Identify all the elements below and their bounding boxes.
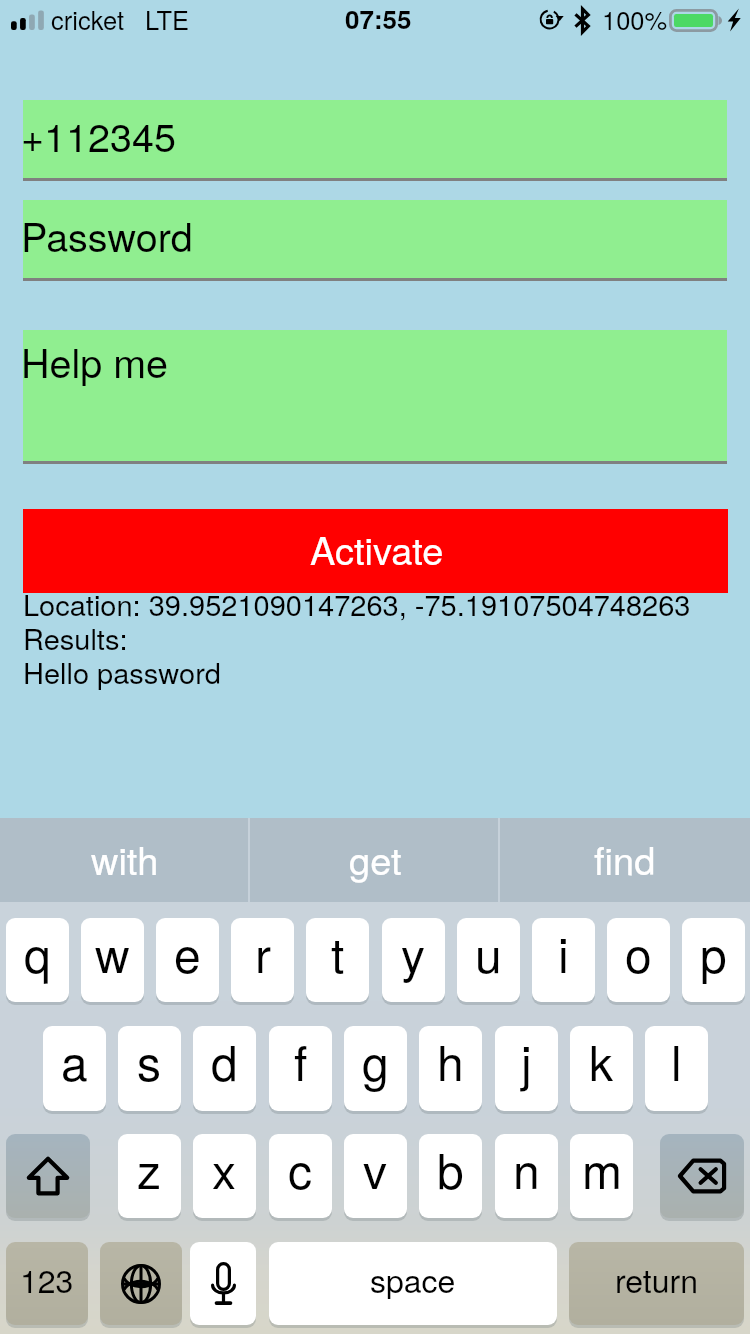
staticText: f	[294, 1026, 308, 1095]
staticText: n	[513, 1134, 540, 1203]
other: Bluetooth	[576, 9, 589, 32]
staticText: b	[437, 1134, 464, 1203]
button[interactable]: Password	[23, 200, 727, 281]
button[interactable]: l	[645, 1026, 708, 1111]
staticText: x	[212, 1134, 237, 1203]
button[interactable]: y	[382, 918, 445, 1002]
staticText: j	[521, 1026, 532, 1095]
staticText: g	[362, 1026, 389, 1095]
button[interactable]: a	[43, 1026, 106, 1111]
button[interactable]: n	[495, 1134, 558, 1218]
button[interactable]: s	[118, 1026, 181, 1111]
staticText: o	[625, 918, 652, 987]
staticText: k	[589, 1026, 614, 1095]
button[interactable]: c	[269, 1134, 332, 1218]
staticText: space	[370, 1256, 456, 1302]
button[interactable]: e	[156, 918, 219, 1002]
staticText: m	[582, 1134, 622, 1203]
button[interactable]: x	[193, 1134, 256, 1218]
staticText: return	[615, 1256, 698, 1302]
staticText: +112345	[21, 107, 176, 164]
button[interactable]: h	[419, 1026, 482, 1111]
button[interactable]: Change keyboard	[100, 1242, 182, 1325]
staticText: y	[401, 918, 426, 987]
button[interactable]: Backspace	[660, 1134, 744, 1218]
button[interactable]: Activate	[23, 509, 728, 593]
button[interactable]: with	[0, 818, 250, 902]
button[interactable]: d	[193, 1026, 256, 1111]
staticText: find	[594, 831, 656, 885]
staticText: h	[437, 1026, 464, 1095]
staticText: Location: 39.9521090147263, -75.19107504…	[23, 583, 691, 692]
button[interactable]: Help me	[23, 330, 727, 464]
staticText: LTE	[145, 1, 190, 38]
staticText: c	[288, 1134, 313, 1203]
button[interactable]: t	[306, 918, 369, 1002]
button[interactable]: p	[682, 918, 745, 1002]
button[interactable]: w	[81, 918, 144, 1002]
staticText: p	[700, 918, 727, 987]
button[interactable]: z	[118, 1134, 181, 1218]
button[interactable]: r	[231, 918, 294, 1002]
button[interactable]: get	[250, 818, 500, 902]
button[interactable]: o	[607, 918, 670, 1002]
button[interactable]: Dictate	[190, 1242, 256, 1325]
staticText: i	[558, 918, 569, 987]
button[interactable]: return	[569, 1242, 744, 1325]
staticText: a	[61, 1026, 88, 1095]
staticText: w	[95, 918, 130, 987]
button[interactable]: m	[570, 1134, 633, 1218]
button[interactable]: g	[344, 1026, 407, 1111]
button[interactable]: j	[495, 1026, 558, 1111]
staticText: q	[24, 918, 51, 987]
button[interactable]: Shift	[6, 1134, 90, 1218]
staticText: e	[174, 918, 201, 987]
staticText: cricket	[51, 1, 125, 38]
staticText: with	[91, 831, 159, 885]
staticText: v	[363, 1134, 388, 1203]
button[interactable]: find	[500, 818, 750, 902]
staticText: Activate	[310, 521, 444, 575]
staticText: t	[331, 918, 345, 987]
staticText: 123	[20, 1256, 74, 1302]
staticText: u	[475, 918, 502, 987]
button[interactable]: +112345	[23, 100, 727, 181]
button[interactable]: k	[570, 1026, 633, 1111]
button[interactable]: v	[344, 1134, 407, 1218]
staticText: 100%	[602, 1, 668, 38]
staticText: 07:55	[345, 0, 412, 37]
button[interactable]: f	[269, 1026, 332, 1111]
staticText: get	[349, 831, 402, 885]
button[interactable]: b	[419, 1134, 482, 1218]
button[interactable]: u	[457, 918, 520, 1002]
staticText: Help me	[21, 333, 169, 390]
staticText: z	[137, 1134, 162, 1203]
button[interactable]: 123	[6, 1242, 88, 1325]
button[interactable]: i	[532, 918, 595, 1002]
staticText: r	[255, 918, 271, 987]
button[interactable]: q	[6, 918, 69, 1002]
button[interactable]: space	[269, 1242, 557, 1325]
staticText: l	[671, 1026, 682, 1095]
staticText: Password	[21, 207, 193, 264]
staticText: d	[211, 1026, 238, 1095]
staticText: s	[137, 1026, 162, 1095]
other: Rotation lock	[540, 9, 565, 30]
